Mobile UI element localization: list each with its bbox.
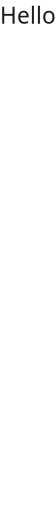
staticText: Hello [0,0,56,30]
